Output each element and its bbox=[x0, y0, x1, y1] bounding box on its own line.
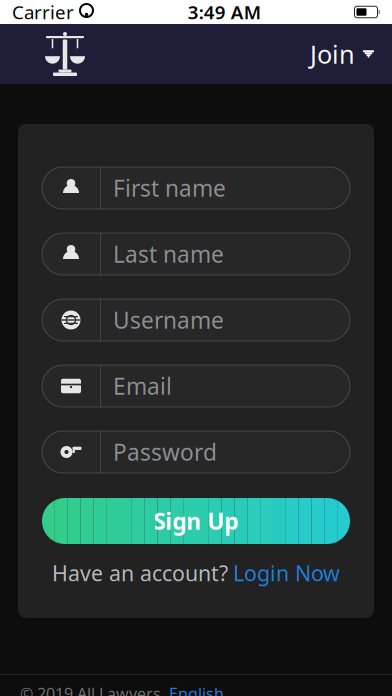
button[interactable]: Home bbox=[0, 24, 96, 84]
staticText: Carrier bbox=[12, 0, 74, 24]
staticText: Login Now bbox=[233, 559, 340, 587]
staticText: Last name bbox=[113, 239, 224, 269]
staticText: English bbox=[169, 683, 224, 696]
button[interactable]: Have an account? bbox=[52, 560, 340, 586]
button[interactable]: Join bbox=[292, 24, 392, 84]
staticText: Sign Up bbox=[153, 506, 238, 536]
button[interactable]: First name bbox=[42, 167, 350, 209]
button[interactable]: Email bbox=[42, 365, 350, 407]
staticText: First name bbox=[113, 173, 226, 203]
staticText: 3:49 AM bbox=[188, 0, 261, 24]
staticText: Join bbox=[310, 37, 355, 71]
button[interactable]: Sign Up bbox=[42, 498, 350, 544]
staticText: Have an account? bbox=[52, 559, 228, 587]
staticText: Username bbox=[113, 305, 224, 335]
button[interactable]: Username bbox=[42, 299, 350, 341]
staticText: © 2019 All Lawyers. bbox=[20, 683, 165, 696]
button[interactable]: Password bbox=[42, 431, 350, 473]
staticText: Email bbox=[113, 371, 172, 401]
button[interactable]: Last name bbox=[42, 233, 350, 275]
staticText: Password bbox=[113, 437, 217, 467]
